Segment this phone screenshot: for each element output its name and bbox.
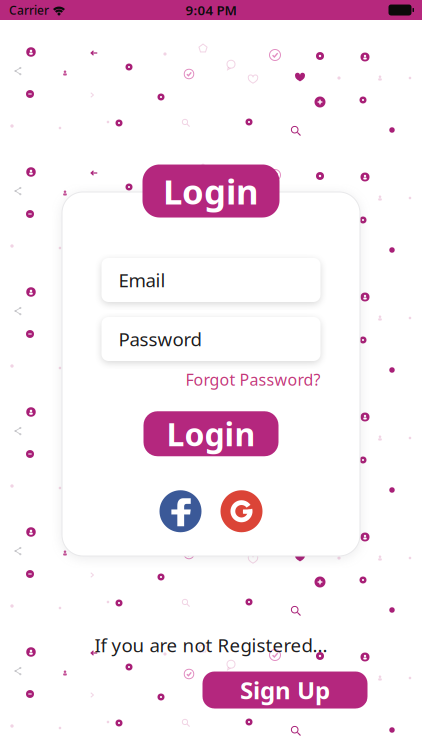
staticText: Forgot Password? (185, 369, 320, 390)
button[interactable]: Sign in with Facebook (159, 490, 201, 532)
staticText: If you are not Registered... (94, 633, 327, 657)
button[interactable]: Login (142, 164, 279, 217)
button[interactable]: Email (101, 258, 320, 302)
button[interactable]: Password (101, 317, 320, 361)
staticText: Carrier (9, 2, 49, 18)
staticText: Password (118, 327, 201, 351)
staticText: Email (118, 268, 165, 292)
staticText: 9:04 PM (185, 1, 236, 19)
staticText: Login (166, 412, 255, 455)
button[interactable]: Sign in with Google (220, 490, 262, 532)
staticText: Login (163, 168, 259, 214)
staticText: Sign Up (240, 674, 330, 706)
button[interactable]: Sign Up (202, 671, 367, 708)
button[interactable]: Forgot Password? (185, 369, 320, 390)
button[interactable]: Login (143, 411, 278, 456)
